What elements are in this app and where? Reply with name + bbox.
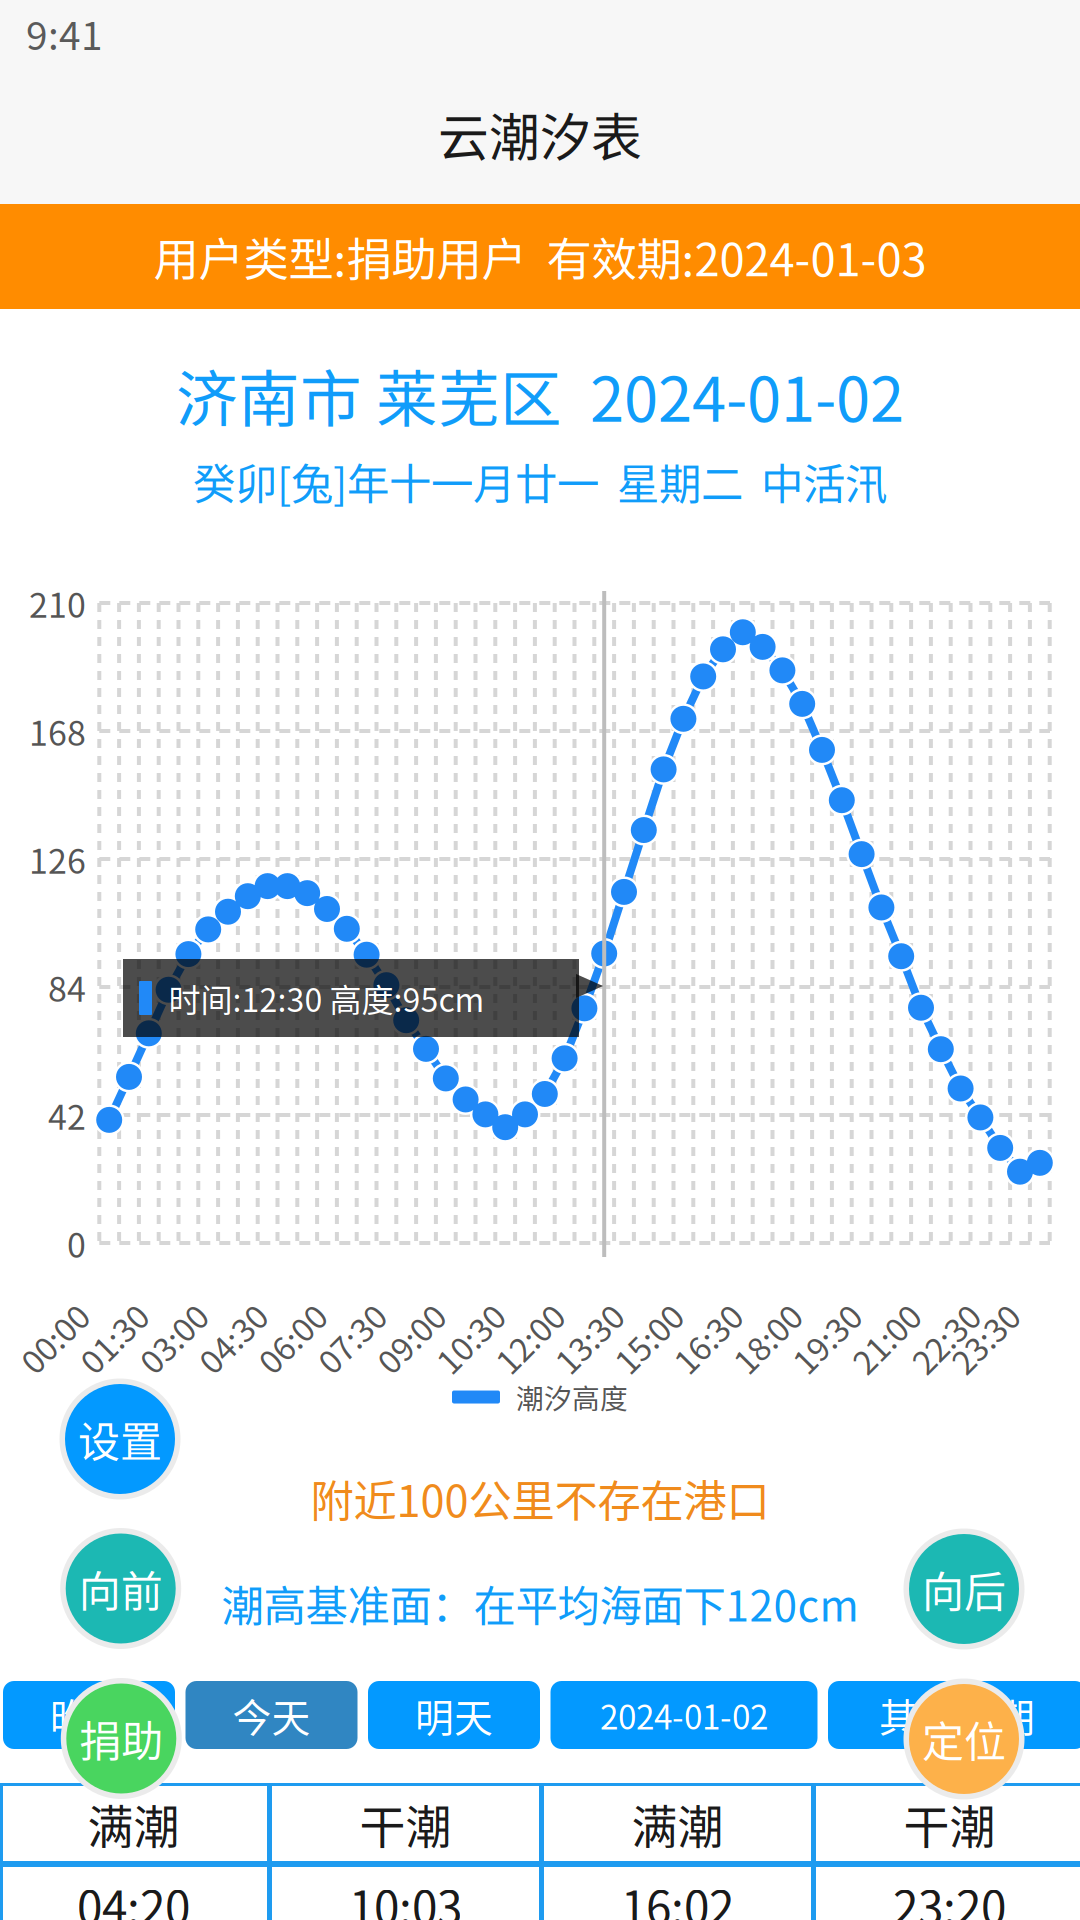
staticText: 设置: [78, 1409, 162, 1469]
button[interactable]: 捐助: [61, 1678, 182, 1799]
staticText: 其他日期: [879, 1687, 1035, 1743]
staticText: 04:20: [77, 1871, 190, 1920]
staticText: 22:30: [905, 1314, 986, 1362]
staticText: 向前: [79, 1558, 163, 1619]
staticText: 用户类型:捐助用户 有效期:2024-01-03: [153, 224, 926, 289]
staticText: 04:30: [192, 1314, 273, 1362]
staticText: 01:30: [73, 1314, 154, 1362]
button[interactable]: 明天: [368, 1681, 540, 1749]
button[interactable]: 今天: [185, 1681, 357, 1749]
staticText: 09:00: [370, 1314, 451, 1362]
staticText: 0: [67, 1218, 86, 1268]
staticText: 9:41: [26, 5, 103, 61]
staticText: 23:30: [944, 1314, 1025, 1362]
staticText: 昨天: [50, 1687, 128, 1743]
staticText: 满潮: [631, 1790, 723, 1857]
staticText: 06:00: [251, 1314, 332, 1362]
staticText: 潮高基准面：在平均海面下120cm: [221, 1572, 858, 1634]
staticText: 84: [48, 962, 86, 1012]
staticText: 云潮汐表: [438, 97, 642, 171]
button[interactable]: 定位: [903, 1678, 1024, 1799]
staticText: 42: [48, 1090, 86, 1140]
staticText: 捐助: [79, 1708, 163, 1769]
staticText: 16:30: [667, 1314, 748, 1362]
staticText: 癸卯[兔]年十一月廿一 星期二 中活汛: [193, 450, 887, 512]
staticText: 03:00: [132, 1314, 213, 1362]
button[interactable]: 2024-01-02: [550, 1681, 817, 1749]
staticText: 12:00: [489, 1314, 570, 1362]
staticText: 2024-01-02: [600, 1691, 768, 1739]
button[interactable]: 设置: [59, 1378, 180, 1499]
staticText: 210: [29, 578, 86, 628]
staticText: 潮汐高度: [516, 1377, 628, 1417]
staticText: 10:03: [349, 1871, 462, 1920]
staticText: 168: [29, 706, 86, 756]
button[interactable]: 昨天: [3, 1681, 175, 1749]
staticText: 10:30: [429, 1314, 510, 1362]
staticText: 16:02: [621, 1871, 734, 1920]
staticText: 干潮: [359, 1790, 451, 1857]
staticText: 济南市 莱芜区 2024-01-02: [176, 350, 904, 440]
button[interactable]: 其他日期: [828, 1681, 1080, 1749]
staticText: 19:30: [786, 1314, 867, 1362]
staticText: 23:20: [893, 1871, 1006, 1920]
staticText: 定位: [922, 1709, 1006, 1769]
staticText: 明天: [415, 1687, 493, 1743]
staticText: 13:30: [548, 1314, 629, 1362]
staticText: 07:30: [311, 1314, 392, 1362]
button[interactable]: 向前: [60, 1528, 181, 1649]
staticText: 满潮: [87, 1790, 179, 1857]
staticText: 干潮: [903, 1790, 995, 1857]
staticText: 时间:12:30 高度:95cm: [168, 975, 484, 1021]
button[interactable]: 向后: [903, 1528, 1024, 1649]
staticText: 附近100公里不存在港口: [310, 1467, 769, 1529]
staticText: 00:00: [14, 1314, 95, 1362]
staticText: 21:00: [845, 1314, 926, 1362]
staticText: 今天: [232, 1687, 310, 1743]
staticText: 126: [29, 834, 86, 884]
staticText: 15:00: [608, 1314, 689, 1362]
staticText: 18:00: [726, 1314, 807, 1362]
staticText: 向后: [922, 1559, 1006, 1619]
